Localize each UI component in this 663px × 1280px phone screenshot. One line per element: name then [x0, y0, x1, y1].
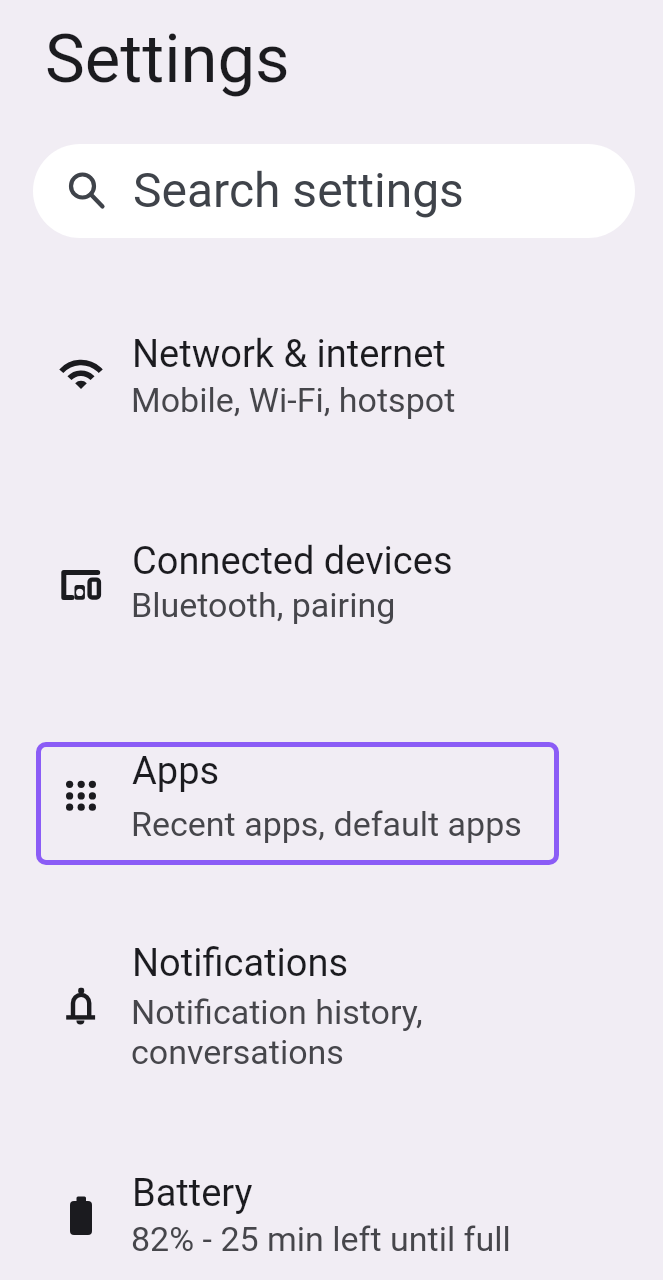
staticText: Apps — [132, 749, 220, 794]
staticText: Notifications — [132, 941, 349, 986]
staticText: Search settings — [133, 162, 464, 218]
button[interactable] — [0, 525, 663, 640]
staticText: Settings — [45, 20, 290, 99]
button[interactable] — [36, 742, 559, 865]
staticText: Notification history, — [131, 992, 423, 1032]
staticText: 82% - 25 min left until full — [131, 1219, 511, 1259]
staticText: Bluetooth, pairing — [131, 585, 396, 625]
staticText: Recent apps, default apps — [131, 804, 522, 844]
staticText: Connected devices — [132, 539, 453, 584]
staticText: Mobile, Wi-Fi, hotspot — [131, 380, 456, 420]
button[interactable] — [0, 320, 663, 435]
staticText: conversations — [131, 1032, 344, 1072]
staticText: Network & internet — [132, 332, 446, 377]
staticText: Battery — [132, 1171, 253, 1216]
button[interactable] — [33, 144, 635, 238]
button[interactable] — [0, 930, 663, 1080]
button[interactable] — [0, 1160, 663, 1270]
